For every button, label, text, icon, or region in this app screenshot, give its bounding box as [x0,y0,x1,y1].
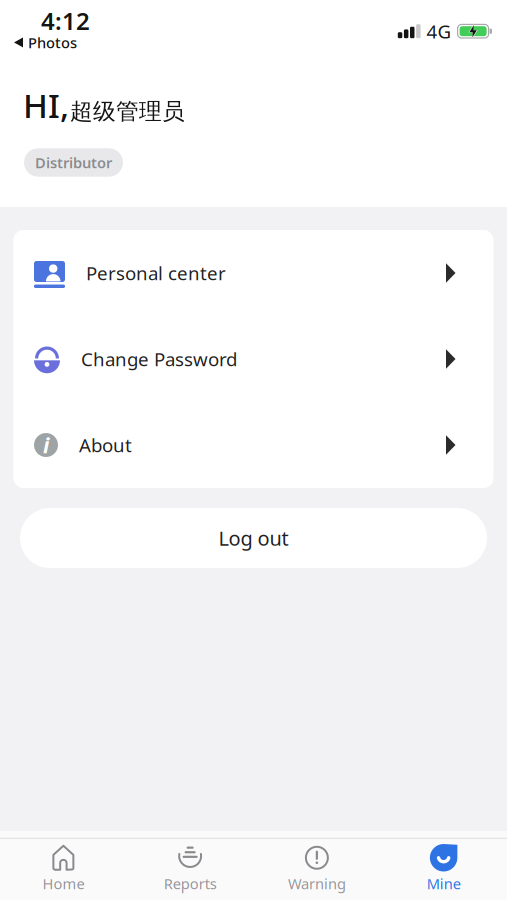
button[interactable]: Change Password [13,316,493,402]
button[interactable]: Reports [127,839,254,893]
button[interactable]: Back to Photos [0,37,77,56]
staticText: Log out [218,525,288,551]
staticText: 4:12 [41,5,90,37]
staticText: 超级管理员 [70,97,185,125]
staticText: HI, [23,83,69,127]
button[interactable]: Mine [380,839,507,893]
staticText: Distributor [35,153,112,172]
button[interactable]: Log out [20,508,487,568]
staticText: Photos [28,33,77,52]
button[interactable]: Warning [253,839,380,893]
staticText: 4G [427,19,452,44]
staticText: Change Password [81,347,237,371]
staticText: Mine [427,874,461,893]
button[interactable]: Personal center [13,230,493,316]
button[interactable]: i [13,402,493,488]
staticText: i [43,431,49,459]
button[interactable]: Home [0,839,127,893]
staticText: Home [42,874,84,893]
staticText: Personal center [86,261,226,285]
staticText: Reports [164,874,217,893]
staticText: About [79,433,132,457]
staticText: Warning [288,874,346,893]
